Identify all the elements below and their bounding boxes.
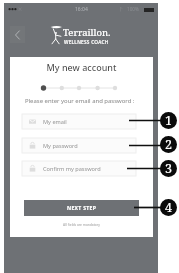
button[interactable]: My password — [22, 138, 136, 153]
staticText: My email — [43, 118, 67, 126]
button[interactable]: NEXT STEP — [24, 200, 139, 216]
staticText: Confirm my password — [43, 165, 101, 173]
staticText: 3 — [165, 160, 172, 177]
staticText: 16:04 — [75, 6, 88, 13]
button[interactable]: My email — [22, 114, 136, 129]
button[interactable]: Back — [10, 26, 25, 43]
staticText: WELLNESS COACH — [64, 39, 109, 45]
staticText: 4 — [165, 199, 172, 216]
staticText: NEXT STEP — [67, 205, 97, 212]
staticText: All fields are mandatory — [10, 222, 153, 226]
staticText: Terraillon. — [63, 26, 111, 39]
staticText: My new account — [10, 61, 153, 73]
staticText: My password — [43, 142, 78, 150]
staticText: 1 — [165, 112, 172, 129]
staticText: 100% — [127, 6, 139, 12]
staticText: 2 — [165, 136, 172, 153]
button[interactable]: Confirm my password — [22, 161, 136, 176]
staticText: Please enter your email and password : — [25, 97, 135, 105]
